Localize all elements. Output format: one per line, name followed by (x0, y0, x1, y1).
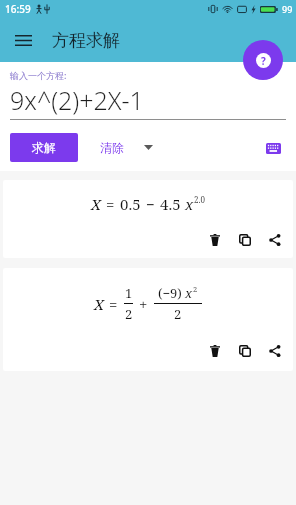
staticText: = (106, 194, 115, 214)
staticText: 1 (125, 284, 133, 302)
staticText: 方程求解 (52, 30, 120, 51)
staticText: 2 (174, 305, 182, 323)
staticText: X (94, 294, 104, 314)
button[interactable]: Share (263, 228, 287, 252)
button[interactable]: 求解 (10, 133, 78, 162)
staticText: 0.5 (120, 194, 141, 214)
button[interactable]: 9x^(2)+2X-1 (10, 83, 144, 117)
button[interactable]: Help (243, 40, 283, 80)
button[interactable]: X (3, 180, 293, 258)
staticText: + (139, 294, 148, 314)
button[interactable]: X (3, 268, 293, 371)
staticText: 16:59 (5, 2, 31, 16)
button[interactable]: Copy (233, 228, 257, 252)
button[interactable]: Menu (8, 25, 38, 55)
button[interactable]: 清除 (94, 133, 159, 162)
staticText: 输入一个方程: (10, 69, 67, 81)
button[interactable]: Share (263, 339, 287, 363)
staticText: ? (261, 54, 266, 68)
staticText: (−9) (158, 284, 182, 302)
staticText: x (185, 194, 194, 214)
staticText: 2 (125, 305, 133, 323)
button[interactable]: Keyboard (260, 135, 286, 161)
staticText: − (146, 194, 155, 214)
staticText: = (109, 294, 118, 314)
staticText: 清除 (100, 140, 124, 155)
staticText: 4.5 (160, 194, 181, 214)
button[interactable]: Copy (233, 339, 257, 363)
button[interactable]: Delete (203, 339, 227, 363)
staticText: 99 (282, 3, 293, 15)
staticText: 2.0 (194, 194, 205, 205)
staticText: 2 (193, 284, 198, 294)
staticText: x (185, 284, 193, 302)
staticText: X (91, 194, 101, 214)
staticText: 求解 (32, 140, 56, 155)
button[interactable]: Delete (203, 228, 227, 252)
